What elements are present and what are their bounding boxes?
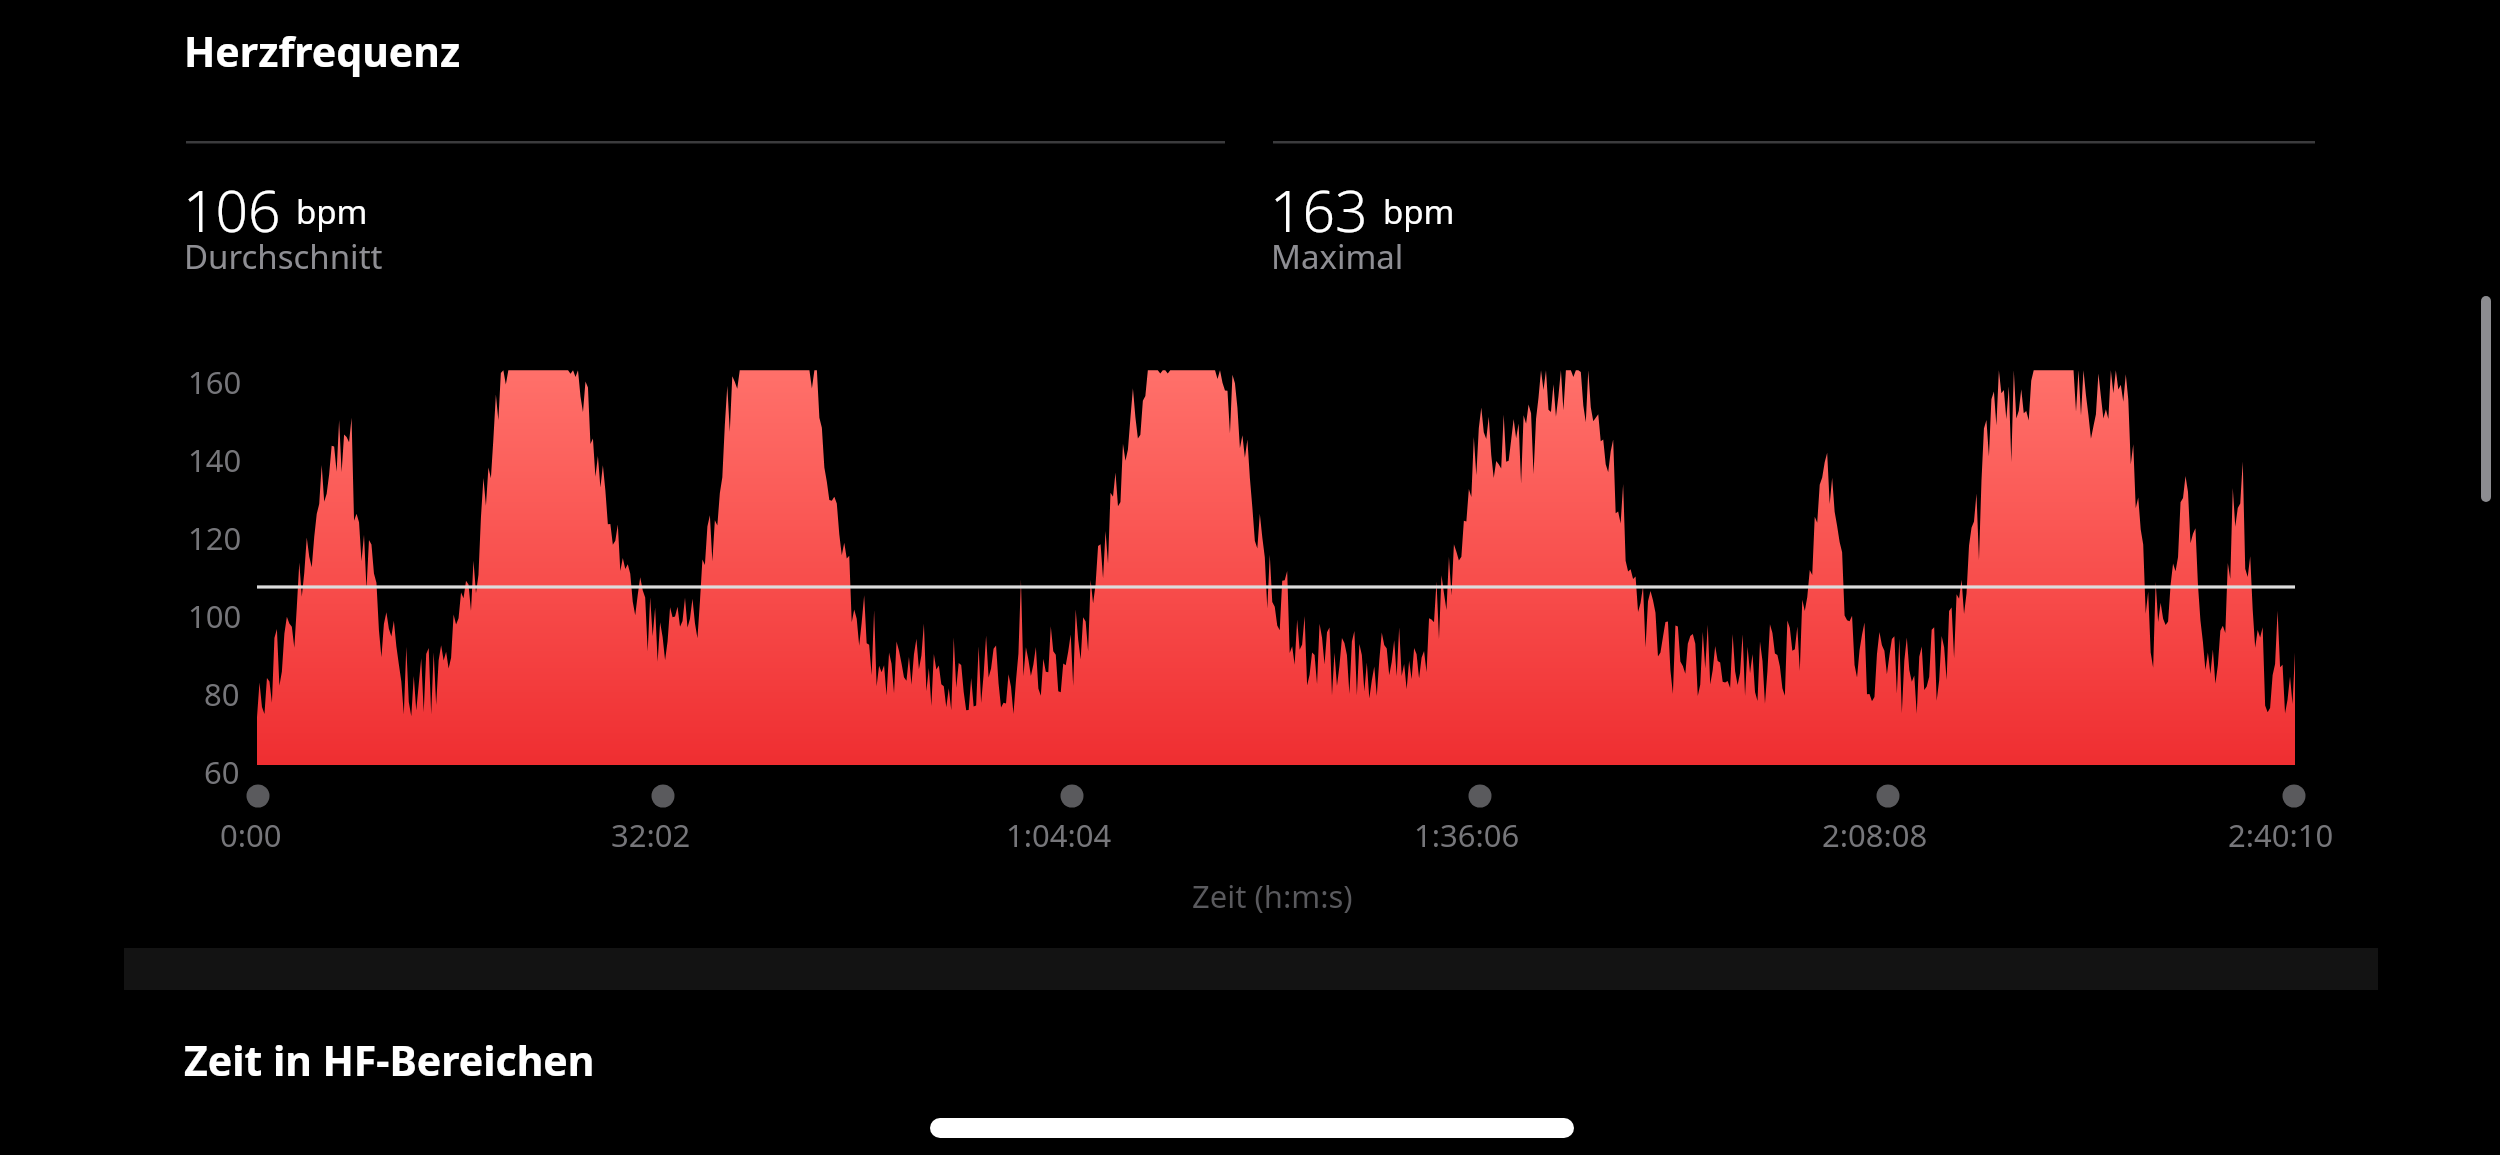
staticText: 0:00 [220,814,282,856]
staticText: 1:04:04 [1006,814,1112,856]
staticText: Maximal [1271,234,1404,279]
staticText: Durchschnitt [184,234,383,279]
staticText: 2:40:10 [2228,814,2334,856]
staticText: 100 [188,595,242,637]
staticText: Zeit (h:m:s) [1192,875,1353,917]
staticText: 1:36:06 [1414,814,1520,856]
staticText: Herzfrequenz [184,23,461,79]
staticText: bpm [296,189,368,234]
staticText: 140 [188,439,242,481]
staticText: 80 [204,673,240,715]
staticText: 106 [183,171,281,249]
staticText: Zeit in HF-Bereichen [184,1032,595,1088]
button[interactable]: Zeit in HF-Bereichen Abschnitt [184,1028,884,1088]
staticText: 32:02 [611,814,691,856]
staticText: 160 [188,361,242,403]
staticText: 120 [188,517,242,559]
staticText: 60 [204,751,240,793]
staticText: bpm [1383,189,1455,234]
button[interactable]: Herzfrequenz Abschnitt [184,18,884,78]
staticText: 2:08:08 [1822,814,1928,856]
staticText: 163 [1270,171,1368,249]
